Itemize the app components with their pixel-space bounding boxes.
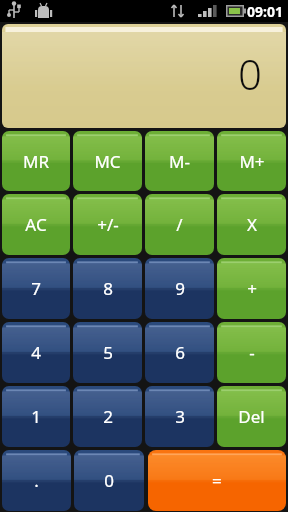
button[interactable]: 3	[145, 386, 214, 447]
staticText: M+	[239, 150, 265, 173]
button[interactable]: -	[217, 322, 286, 383]
button[interactable]: .	[2, 450, 71, 511]
staticText: +	[247, 277, 257, 300]
button[interactable]: Equals	[148, 450, 286, 511]
staticText: 4	[31, 341, 41, 364]
staticText: Del	[238, 405, 265, 428]
button[interactable]: 5	[73, 322, 142, 383]
staticText: 5	[103, 341, 113, 364]
staticText: 6	[175, 341, 185, 364]
button[interactable]: MR	[2, 131, 70, 191]
button[interactable]: Del	[217, 386, 286, 447]
button[interactable]: 9	[145, 258, 214, 319]
staticText: 0	[104, 469, 114, 492]
button[interactable]: 0	[74, 450, 144, 511]
staticText: 0	[238, 45, 262, 102]
button[interactable]: +	[217, 258, 286, 319]
staticText: 8	[103, 277, 113, 300]
button[interactable]: M+	[217, 131, 286, 191]
staticText: 2	[103, 405, 113, 428]
staticText: =	[212, 469, 222, 492]
button[interactable]: 6	[145, 322, 214, 383]
staticText: 7	[31, 277, 41, 300]
button[interactable]: 7	[2, 258, 70, 319]
staticText: -	[249, 341, 255, 364]
staticText: M-	[169, 150, 190, 173]
staticText: +/-	[97, 213, 119, 236]
staticText: X	[247, 213, 257, 236]
staticText: AC	[25, 213, 47, 236]
button[interactable]: 4	[2, 322, 70, 383]
staticText: /	[176, 213, 183, 236]
button[interactable]: X	[217, 194, 286, 255]
button[interactable]: +/-	[73, 194, 142, 255]
button[interactable]: /	[145, 194, 214, 255]
staticText: .	[34, 469, 39, 492]
staticText: MC	[94, 150, 121, 173]
staticText: 1	[31, 405, 41, 428]
button[interactable]: 2	[73, 386, 142, 447]
button[interactable]: 8	[73, 258, 142, 319]
staticText: 3	[175, 405, 185, 428]
button[interactable]: MC	[73, 131, 142, 191]
staticText: MR	[23, 150, 49, 173]
button[interactable]: 1	[2, 386, 70, 447]
button[interactable]: M-	[145, 131, 214, 191]
staticText: 9	[175, 277, 185, 300]
button[interactable]: AC	[2, 194, 70, 255]
staticText: 09:01	[247, 2, 283, 21]
